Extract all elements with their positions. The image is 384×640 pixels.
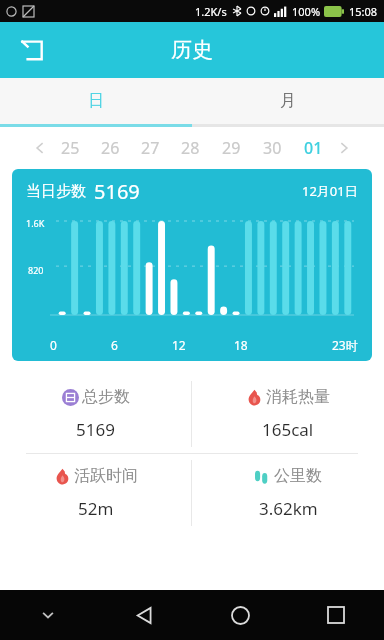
staticText: 30 [263,137,282,159]
staticText: 25 [61,137,80,159]
staticText: 月 [280,91,296,111]
button[interactable]: 01 [293,127,334,169]
button[interactable]: 29 [211,127,252,169]
button[interactable]: 30 [252,127,293,169]
staticText: 0 [50,337,57,353]
button[interactable]: 活跃时间 [0,454,191,532]
button[interactable]: 27 [130,127,170,169]
staticText: 6 [111,337,118,353]
staticText: 5169 [76,418,115,441]
staticText: 23时 [332,337,358,353]
button[interactable]: 28 [170,127,211,169]
staticText: 活跃时间 [74,466,138,486]
staticText: 165cal [262,418,314,441]
staticText: 日 [88,91,104,111]
staticText: 01 [304,137,323,159]
staticText: 12月01日 [302,182,358,200]
staticText: 5169 [94,178,140,205]
staticText: 27 [141,137,160,159]
staticText: 公里数 [274,466,322,486]
staticText: 历史 [171,37,213,63]
button[interactable]: Next [334,138,354,158]
staticText: 26 [101,137,120,159]
button[interactable]: Hide keyboard [0,590,96,640]
button[interactable]: 26 [90,127,130,169]
staticText: 12 [172,337,186,353]
staticText: 当日步数 [26,182,86,201]
staticText: 1.6K [26,217,45,229]
staticText: 消耗热量 [266,387,330,407]
staticText: 100% [292,4,321,19]
staticText: 18 [234,337,248,353]
button[interactable]: 25 [50,127,90,169]
button[interactable]: 当日步数 [12,169,372,361]
button[interactable]: 消耗热量 [192,375,384,453]
staticText: 28 [181,137,200,159]
button[interactable]: Back [8,26,56,74]
button[interactable]: Previous [30,138,50,158]
button[interactable]: 月 [192,78,384,124]
button[interactable]: 日 [0,78,192,124]
staticText: 1.2K/s [195,4,227,19]
button[interactable]: Back [96,590,192,640]
staticText: 52m [78,497,114,520]
button[interactable]: 公里数 [192,454,384,532]
staticText: 3.62km [259,497,318,520]
staticText: 总步数 [82,387,130,407]
button[interactable]: Home [192,590,288,640]
staticText: 29 [222,137,241,159]
button[interactable]: Recents [288,590,384,640]
staticText: 820 [28,264,44,276]
staticText: 15:08 [349,4,378,19]
button[interactable]: 总步数 [0,375,191,453]
